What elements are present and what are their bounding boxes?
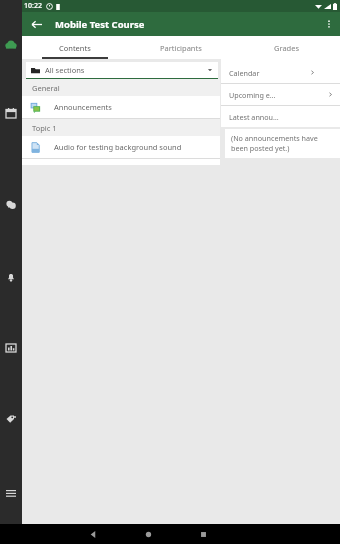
staticText: All sections bbox=[45, 65, 85, 75]
staticText: Contents bbox=[59, 43, 91, 53]
staticText: Grades bbox=[274, 43, 300, 53]
button[interactable]: Tags bbox=[0, 410, 22, 428]
button[interactable]: Menu bbox=[0, 484, 22, 502]
button[interactable]: All sections bbox=[26, 62, 218, 78]
staticText: Announcements bbox=[54, 102, 112, 112]
staticText: General bbox=[32, 83, 60, 93]
button[interactable]: Moodle bbox=[0, 36, 22, 54]
button[interactable]: Contents bbox=[22, 36, 128, 59]
button[interactable]: Grades bbox=[234, 36, 340, 59]
button[interactable]: More options bbox=[320, 15, 338, 33]
button[interactable]: Calendar bbox=[0, 104, 22, 122]
button[interactable]: Grades bbox=[0, 339, 22, 357]
staticText: 10:22 bbox=[24, 1, 42, 11]
staticText: Latest announcements bbox=[229, 112, 281, 122]
button[interactable]: Participants bbox=[128, 36, 234, 59]
button[interactable]: Home bbox=[137, 524, 159, 544]
staticText: Audio for testing background sound bbox=[54, 142, 182, 152]
staticText: Participants bbox=[160, 43, 202, 53]
staticText: Topic 1 bbox=[32, 123, 57, 133]
button[interactable]: Back bbox=[82, 524, 104, 544]
button[interactable]: Back bbox=[27, 15, 45, 33]
button[interactable]: Announcements bbox=[22, 96, 220, 118]
button[interactable]: Messages bbox=[0, 196, 22, 214]
staticText: Mobile Test Course bbox=[55, 18, 145, 31]
button[interactable]: Audio for testing background sound bbox=[22, 136, 220, 158]
button[interactable]: Upcoming events bbox=[221, 84, 340, 105]
button[interactable]: Calendar bbox=[221, 62, 340, 83]
button[interactable]: Notifications bbox=[0, 268, 22, 286]
staticText: Calendar bbox=[229, 68, 260, 78]
staticText: (No announcements have been posted yet.) bbox=[231, 133, 334, 153]
button[interactable]: Latest announcements bbox=[221, 106, 340, 127]
staticText: Upcoming events bbox=[229, 90, 278, 100]
button[interactable]: Recent apps bbox=[192, 524, 214, 544]
